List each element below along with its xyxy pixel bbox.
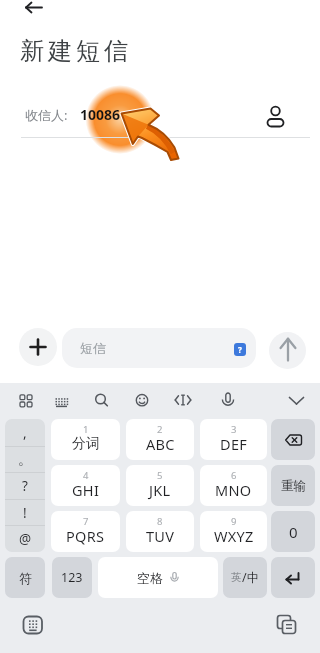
staticText: ! xyxy=(23,504,27,522)
button[interactable]: 5 xyxy=(126,465,194,506)
staticText: 。 xyxy=(18,451,32,468)
staticText: @ xyxy=(19,530,32,548)
button[interactable]: , xyxy=(5,419,45,552)
staticText: 重输 xyxy=(281,478,306,494)
button[interactable]: 6 xyxy=(200,465,267,506)
button[interactable]: 3 xyxy=(200,419,267,460)
button[interactable] xyxy=(50,390,72,412)
staticText: 5 xyxy=(157,469,163,482)
staticText: ? xyxy=(22,477,28,495)
staticText: 10086 xyxy=(80,105,121,124)
staticText: ? xyxy=(238,344,242,355)
button[interactable] xyxy=(90,390,112,412)
button[interactable]: 重输 xyxy=(271,465,315,506)
button[interactable] xyxy=(269,332,306,369)
staticText: 新建短信 xyxy=(18,36,130,66)
staticText: TUV xyxy=(146,526,175,546)
staticText: 短信 xyxy=(80,340,106,356)
staticText: 2 xyxy=(157,423,163,436)
staticText: 符 xyxy=(19,570,32,586)
staticText: 8 xyxy=(157,515,163,528)
staticText: 英 xyxy=(231,571,242,584)
staticText: GHI xyxy=(72,480,100,500)
button[interactable] xyxy=(172,390,194,412)
button[interactable]: 123 xyxy=(52,557,92,598)
button[interactable]: 8 xyxy=(126,511,194,552)
staticText: /中 xyxy=(242,569,260,586)
button[interactable] xyxy=(19,328,57,366)
button[interactable] xyxy=(15,390,37,412)
staticText: 1 xyxy=(83,423,89,436)
button[interactable]: 0 xyxy=(271,511,315,552)
button[interactable] xyxy=(263,99,289,129)
staticText: 6 xyxy=(231,469,237,482)
staticText: 3 xyxy=(231,423,237,436)
button[interactable] xyxy=(131,390,153,412)
staticText: 4 xyxy=(83,469,89,482)
staticText: PQRS xyxy=(66,526,105,546)
button[interactable]: 1 xyxy=(51,419,120,460)
button[interactable]: 英 xyxy=(223,557,267,598)
staticText: 123 xyxy=(61,569,83,586)
button[interactable]: 2 xyxy=(126,419,194,460)
button[interactable]: 7 xyxy=(51,511,120,552)
button[interactable]: 空格 xyxy=(98,557,218,598)
staticText: 9 xyxy=(231,515,237,528)
button[interactable] xyxy=(20,611,47,638)
button[interactable] xyxy=(16,0,48,18)
button[interactable] xyxy=(271,419,315,460)
staticText: WXYZ xyxy=(214,526,254,546)
button[interactable]: 4 xyxy=(51,465,120,506)
staticText: DEF xyxy=(220,434,248,454)
staticText: , xyxy=(23,424,27,442)
staticText: JKL xyxy=(149,480,171,500)
button[interactable] xyxy=(217,390,239,412)
button[interactable]: 符 xyxy=(5,557,45,598)
staticText: MNO xyxy=(215,480,252,500)
button[interactable] xyxy=(273,611,300,638)
staticText: 收信人: xyxy=(25,106,68,124)
staticText: 7 xyxy=(83,515,89,528)
staticText: 空格 xyxy=(137,570,163,586)
button[interactable] xyxy=(285,390,307,412)
button[interactable]: 短信 xyxy=(62,328,256,368)
staticText: ABC xyxy=(146,434,175,454)
button[interactable]: 9 xyxy=(200,511,267,552)
staticText: 0 xyxy=(289,522,298,542)
button[interactable] xyxy=(271,557,315,598)
staticText: 分词 xyxy=(72,435,100,453)
